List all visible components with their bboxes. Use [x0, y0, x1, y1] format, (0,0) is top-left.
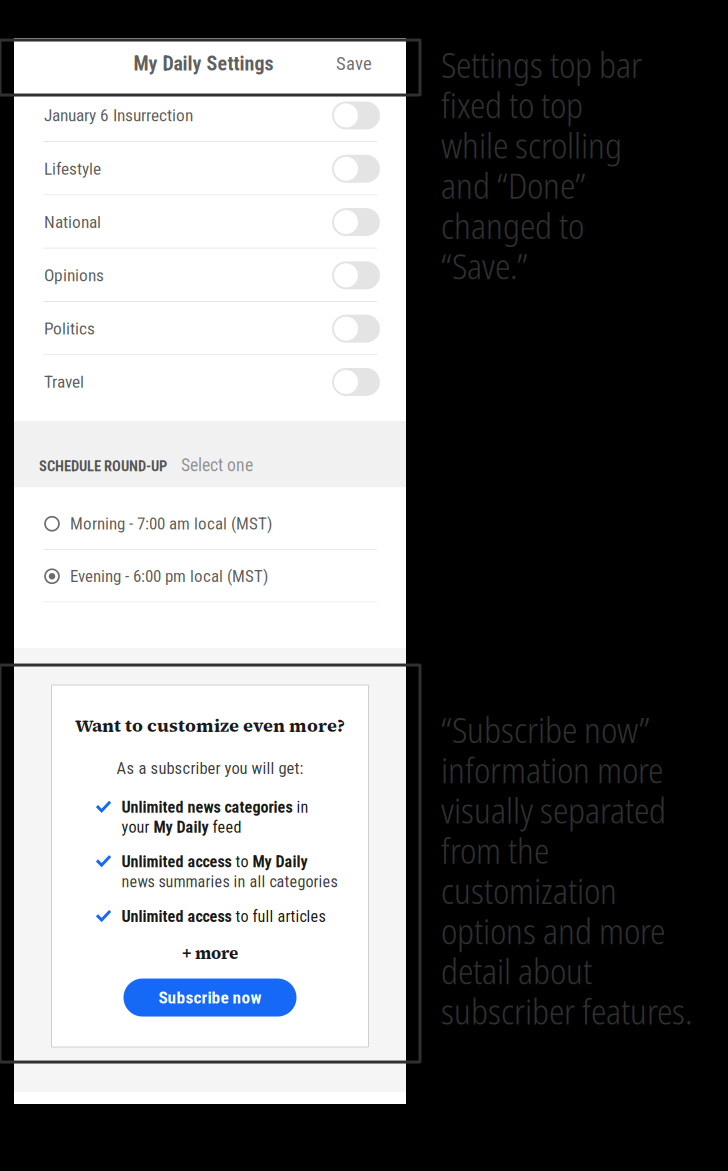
button[interactable]: National: [14, 195, 406, 249]
staticText: Unlimited access to full articles: [121, 907, 325, 926]
staticText: Want to customize even more?: [75, 713, 345, 738]
button[interactable]: Morning - 7:00 am local (MST): [14, 497, 406, 550]
staticText: SCHEDULE ROUND-UP: [39, 458, 167, 475]
button[interactable]: Subscribe now: [123, 978, 296, 1016]
button[interactable]: Politics: [14, 302, 406, 355]
staticText: Morning - 7:00 am local (MST): [70, 514, 272, 534]
button[interactable]: Travel: [14, 355, 406, 409]
staticText: Travel: [44, 372, 84, 392]
staticText: My Daily Settings: [133, 52, 273, 75]
button[interactable]: Evening - 6:00 pm local (MST): [14, 550, 406, 602]
button[interactable]: Save: [325, 42, 383, 86]
staticText: January 6 Insurrection: [44, 105, 193, 126]
staticText: “Subscribe now” information more visuall…: [441, 706, 692, 1035]
staticText: Opinions: [44, 265, 104, 285]
staticText: Politics: [44, 318, 95, 339]
button[interactable]: January 6 Insurrection: [14, 89, 406, 142]
staticText: + more: [182, 942, 238, 964]
staticText: Unlimited news categories in: [121, 798, 308, 816]
button[interactable]: Lifestyle: [14, 142, 406, 195]
staticText: news summaries in all categories: [121, 872, 337, 891]
staticText: Subscribe now: [158, 987, 261, 1008]
staticText: your My Daily feed: [121, 818, 241, 836]
button[interactable]: Opinions: [14, 249, 406, 302]
staticText: Select one: [181, 455, 253, 475]
staticText: Save: [336, 53, 372, 75]
staticText: Lifestyle: [44, 159, 101, 179]
staticText: Unlimited access to My Daily: [121, 852, 307, 871]
staticText: National: [44, 212, 101, 232]
staticText: Evening - 6:00 pm local (MST): [70, 566, 268, 586]
staticText: Settings top bar fixed to top while scro…: [441, 41, 642, 289]
staticText: As a subscriber you will get:: [116, 759, 303, 778]
